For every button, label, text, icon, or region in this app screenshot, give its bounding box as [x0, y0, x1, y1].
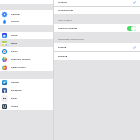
button[interactable]: General	[0, 10, 53, 18]
staticText: Driving	[58, 46, 67, 49]
staticText: PREFERRED DIRECTIONS	[58, 38, 85, 41]
staticText: Facebook	[11, 89, 22, 92]
button[interactable]: Always in English	[127, 26, 136, 31]
button[interactable]: Twitter	[0, 79, 53, 86]
button[interactable]: Cloud	[0, 32, 53, 39]
button[interactable]: Photos & Camera	[0, 55, 53, 63]
staticText: General	[11, 13, 20, 16]
staticText: In Miles	[58, 1, 67, 4]
button[interactable]: Vimeo	[0, 102, 53, 110]
button[interactable]: Game Center	[0, 63, 53, 71]
button[interactable]: In Kilometres	[54, 7, 140, 14]
staticText: Cloud	[11, 34, 18, 37]
staticText: Maps	[11, 42, 18, 45]
staticText: Always in English	[58, 27, 78, 30]
button[interactable]: Privacy	[0, 18, 53, 25]
staticText: UNIT LABELS	[58, 19, 72, 22]
button[interactable]: Maps	[0, 39, 53, 47]
button[interactable]: Walking	[54, 52, 140, 60]
button[interactable]: Always in English	[54, 24, 140, 32]
button[interactable]: Flickr	[0, 94, 53, 102]
staticText: Privacy	[11, 20, 20, 23]
staticText: Safari	[11, 50, 18, 53]
staticText: Game Center	[11, 66, 26, 69]
staticText: Walking	[58, 55, 68, 58]
staticText: Photos & Camera	[11, 58, 31, 61]
button[interactable]: Safari	[0, 47, 53, 55]
button[interactable]: Facebook	[0, 86, 53, 94]
button[interactable]: Driving	[54, 43, 140, 51]
button[interactable]: In Miles	[54, 0, 140, 6]
staticText: Flickr	[11, 97, 18, 100]
staticText: In Kilometres	[58, 9, 74, 12]
staticText: Vimeo	[11, 105, 19, 108]
staticText: Twitter	[11, 81, 20, 84]
